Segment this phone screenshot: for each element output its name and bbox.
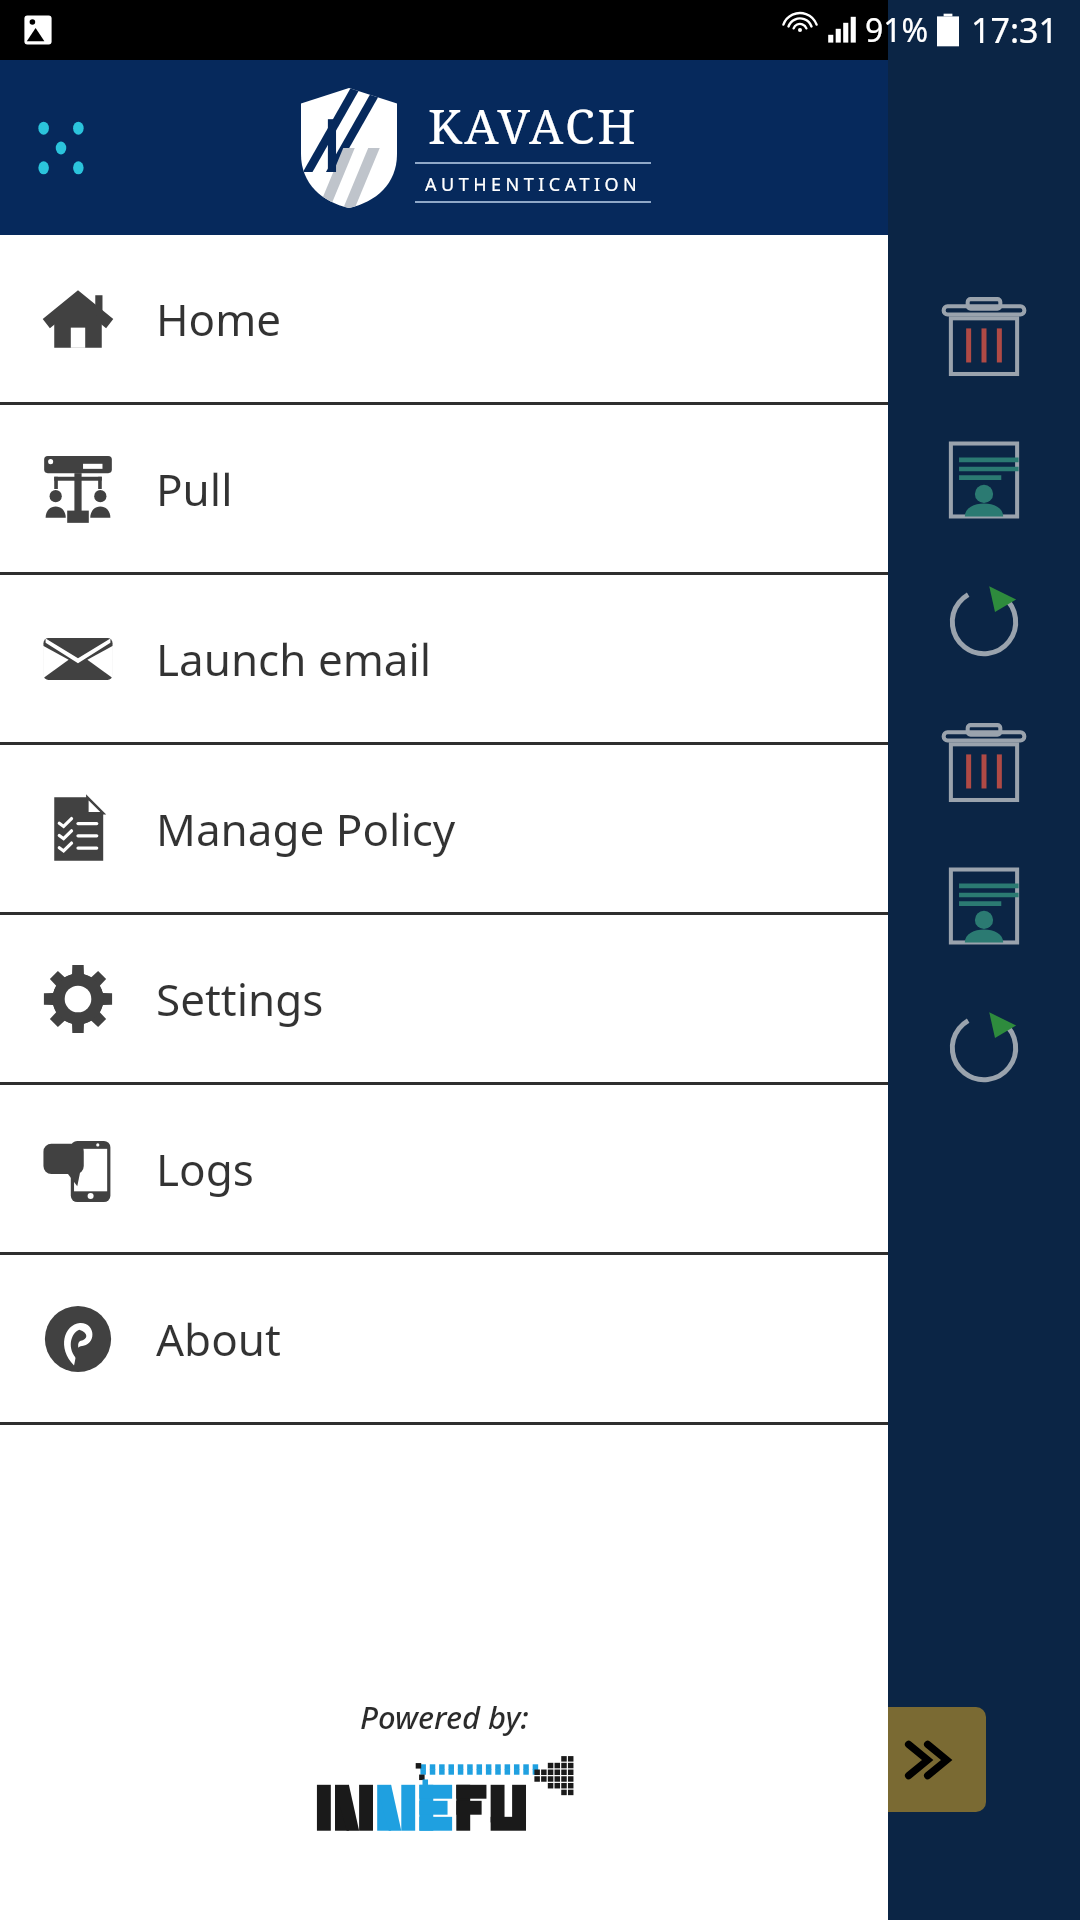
staticText: About bbox=[156, 1309, 281, 1369]
staticText: 91% bbox=[865, 8, 929, 52]
button[interactable]: Expand panel bbox=[876, 1707, 986, 1812]
button[interactable]: Pull bbox=[0, 405, 888, 572]
button[interactable]: Refresh bbox=[936, 1000, 1032, 1096]
button[interactable]: Refresh bbox=[936, 574, 1032, 670]
button[interactable]: Launch email bbox=[0, 575, 888, 742]
staticText: KAVACH bbox=[428, 93, 639, 158]
button[interactable]: Identity card bbox=[936, 858, 1032, 954]
button[interactable]: Logs bbox=[0, 1085, 888, 1252]
button[interactable]: Manage Policy bbox=[0, 745, 888, 912]
button[interactable]: Menu bbox=[22, 109, 100, 187]
staticText: Home bbox=[156, 289, 282, 349]
staticText: Pull bbox=[156, 459, 233, 519]
staticText: Launch email bbox=[156, 629, 432, 689]
staticText: Logs bbox=[156, 1139, 254, 1199]
staticText: Manage Policy bbox=[156, 799, 456, 859]
button[interactable]: Delete bbox=[936, 290, 1032, 386]
button[interactable]: Delete bbox=[936, 716, 1032, 812]
staticText: Powered by: bbox=[360, 1696, 529, 1738]
button[interactable]: About bbox=[0, 1255, 888, 1422]
staticText: Settings bbox=[156, 969, 324, 1029]
button[interactable]: Identity card bbox=[936, 432, 1032, 528]
button[interactable]: Settings bbox=[0, 915, 888, 1082]
staticText: 17:31 bbox=[971, 7, 1058, 53]
staticText: AUTHENTICATION bbox=[425, 172, 642, 197]
button[interactable]: Home bbox=[0, 235, 888, 402]
